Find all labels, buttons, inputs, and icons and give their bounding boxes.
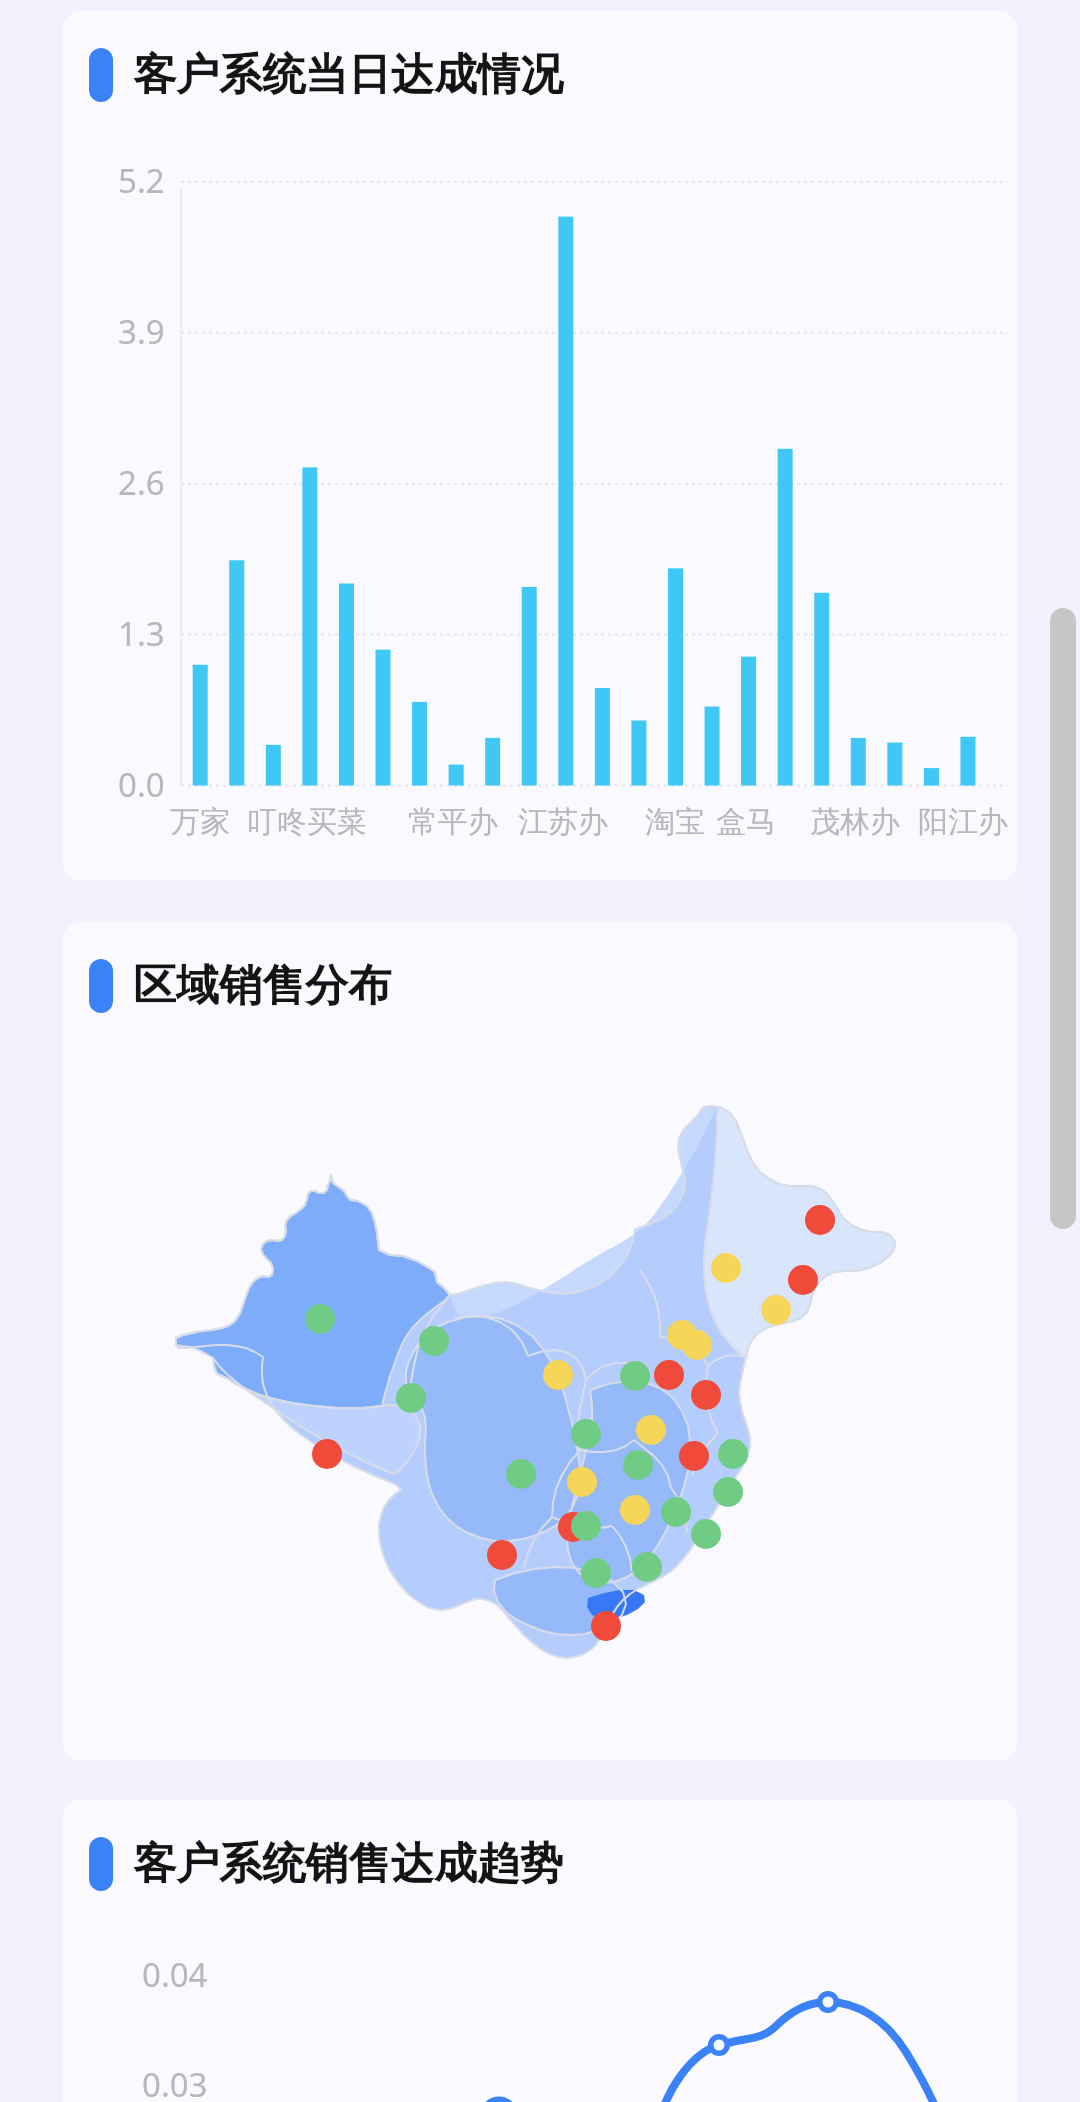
staticText: 0.0 [118,762,165,807]
staticText: 江苏办 [518,803,608,841]
staticText: 盒马 [716,803,776,841]
staticText: 叮咚买菜 [247,803,367,841]
staticText: 阳江办 [918,803,1008,841]
staticText: 淘宝 [645,803,705,841]
staticText: 客户系统销售达成趋势 [133,1837,563,1891]
staticText: 3.9 [118,309,165,354]
staticText: 万家 [170,803,230,841]
staticText: 5.2 [118,158,165,203]
staticText: 茂林办 [810,803,900,841]
staticText: 客户系统当日达成情况 [133,48,563,102]
staticText: 1.3 [118,611,165,656]
button[interactable]: 客户系统销售达成趋势 [63,1800,1017,2102]
staticText: 0.04 [142,1952,208,1997]
button[interactable]: 客户系统当日达成情况 [63,11,1017,880]
staticText: 常平办 [408,803,498,841]
button[interactable]: 区域销售分布 [63,922,1017,1760]
staticText: 0.03 [142,2062,208,2102]
staticText: 2.6 [118,460,165,505]
staticText: 区域销售分布 [133,959,391,1013]
